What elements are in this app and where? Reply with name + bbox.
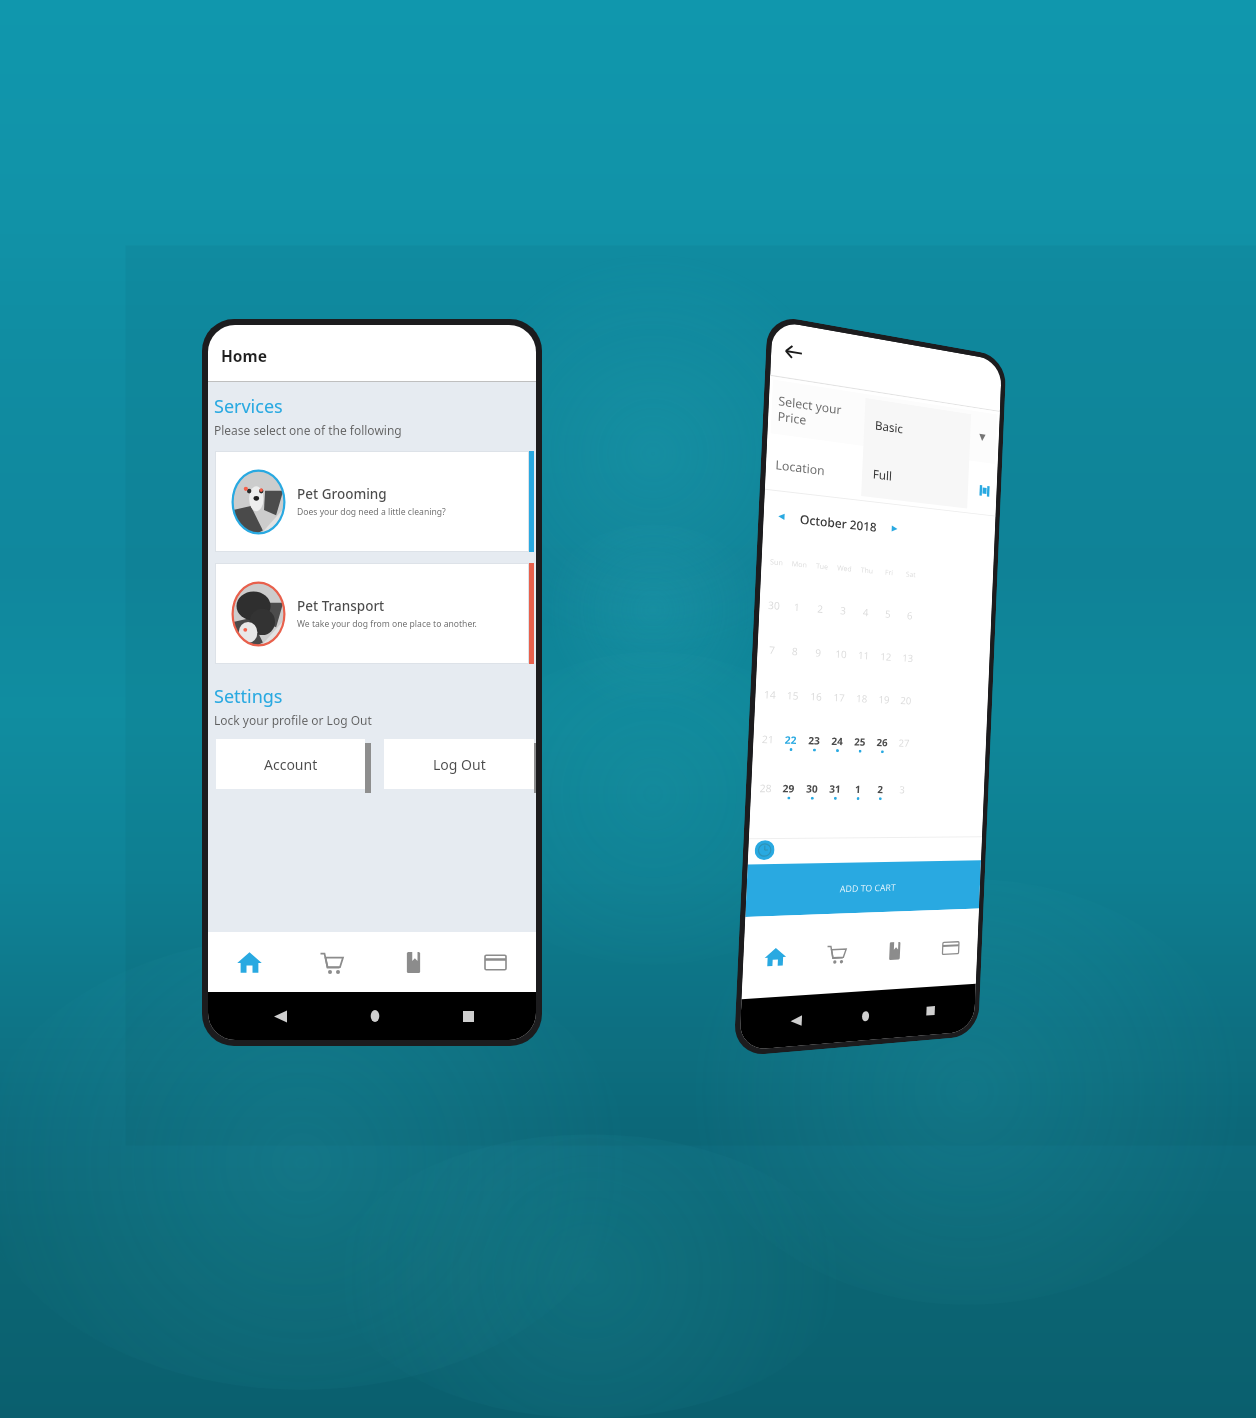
- staticText: 31: [829, 781, 842, 796]
- staticText: Does your dog need a little cleaning?: [297, 506, 446, 518]
- staticText: 27: [898, 736, 910, 750]
- staticText: 15: [786, 688, 799, 703]
- staticText: 9: [815, 645, 822, 660]
- button[interactable]: Pet Grooming: [215, 451, 529, 552]
- button[interactable]: 25: [848, 734, 871, 753]
- staticText: 22: [784, 732, 797, 747]
- staticText: 13: [902, 650, 914, 665]
- staticText: Select your Price: [777, 392, 843, 433]
- staticText: 2: [817, 601, 824, 616]
- staticText: 7: [769, 642, 776, 657]
- button[interactable]: Cart: [290, 932, 372, 992]
- button[interactable]: 24: [825, 733, 849, 752]
- button[interactable]: Payment: [454, 932, 536, 992]
- staticText: Pet Transport: [297, 597, 385, 615]
- staticText: 3: [840, 603, 847, 618]
- staticText: Fri: [885, 568, 894, 578]
- button[interactable]: 30: [799, 781, 824, 800]
- button[interactable]: 21: [756, 731, 780, 747]
- button[interactable]: 8: [783, 643, 806, 659]
- button[interactable]: 29: [777, 781, 800, 800]
- button[interactable]: 3: [891, 782, 913, 796]
- button[interactable]: 9: [806, 645, 830, 660]
- staticText: 30: [768, 597, 781, 613]
- button[interactable]: Select your Price: [767, 376, 1000, 467]
- button[interactable]: 27: [893, 735, 915, 750]
- staticText: Services: [214, 394, 283, 419]
- button[interactable]: 12: [874, 649, 897, 664]
- button[interactable]: 17: [827, 690, 851, 705]
- staticText: 25: [854, 734, 866, 749]
- staticText: 8: [792, 644, 798, 658]
- button[interactable]: 30: [762, 597, 786, 613]
- button[interactable]: 2: [868, 782, 891, 800]
- button[interactable]: Basic: [863, 398, 971, 461]
- button[interactable]: Pick location: [975, 480, 993, 501]
- button[interactable]: 19: [872, 692, 895, 707]
- staticText: 16: [810, 689, 823, 704]
- button[interactable]: 4: [854, 604, 877, 620]
- staticText: 28: [759, 781, 772, 795]
- staticText: Log Out: [433, 755, 486, 774]
- button[interactable]: Pick time: [754, 840, 775, 860]
- staticText: 1: [794, 599, 800, 614]
- button[interactable]: Back: [778, 335, 808, 368]
- button[interactable]: Log Out: [384, 739, 534, 789]
- staticText: We take your dog from one place to anoth…: [297, 618, 477, 630]
- staticText: 11: [858, 648, 870, 662]
- button[interactable]: 3: [831, 602, 854, 618]
- button[interactable]: 23: [802, 733, 826, 752]
- staticText: 19: [878, 692, 890, 706]
- button[interactable]: Payment: [921, 909, 979, 987]
- staticText: Full: [873, 465, 892, 484]
- staticText: Wed: [837, 563, 852, 575]
- staticText: 4: [863, 605, 869, 619]
- button[interactable]: 1: [785, 599, 808, 615]
- button[interactable]: 1: [846, 782, 869, 800]
- button[interactable]: ADD TO CART: [745, 860, 981, 917]
- button[interactable]: Home: [208, 932, 290, 992]
- button[interactable]: Pet Transport: [215, 563, 529, 664]
- staticText: 29: [782, 781, 795, 795]
- button[interactable]: Bookings: [864, 910, 924, 991]
- staticText: October 2018: [800, 510, 878, 535]
- button[interactable]: 31: [823, 781, 846, 800]
- staticText: Settings: [214, 684, 283, 709]
- button[interactable]: 5: [876, 606, 899, 621]
- button[interactable]: 16: [804, 689, 828, 704]
- staticText: 5: [885, 607, 891, 621]
- button[interactable]: 6: [898, 608, 920, 623]
- button[interactable]: Next month: [888, 521, 901, 536]
- staticText: 6: [907, 608, 913, 622]
- button[interactable]: 20: [894, 693, 917, 708]
- button[interactable]: Bookings: [372, 932, 454, 992]
- staticText: 17: [833, 690, 846, 705]
- button[interactable]: 13: [896, 650, 919, 665]
- button[interactable]: 14: [758, 687, 782, 702]
- staticText: 18: [856, 691, 868, 706]
- staticText: 3: [899, 782, 905, 796]
- button[interactable]: 26: [870, 735, 893, 753]
- button[interactable]: Full: [861, 447, 969, 508]
- button[interactable]: Account: [216, 739, 365, 789]
- button[interactable]: Previous month: [774, 509, 789, 525]
- staticText: Pet Grooming: [297, 485, 387, 503]
- button[interactable]: 28: [754, 781, 778, 795]
- staticText: Location: [775, 456, 826, 478]
- staticText: Tue: [816, 561, 828, 573]
- button[interactable]: 18: [850, 691, 873, 706]
- button[interactable]: 11: [852, 647, 875, 663]
- staticText: 12: [880, 649, 892, 664]
- button[interactable]: Location: [765, 436, 997, 516]
- button[interactable]: 2: [808, 601, 832, 617]
- button[interactable]: 22: [779, 732, 803, 751]
- button[interactable]: 15: [781, 688, 804, 703]
- button[interactable]: 7: [760, 642, 784, 658]
- staticText: ADD TO CART: [840, 881, 896, 894]
- button[interactable]: Cart: [804, 913, 867, 995]
- staticText: Home: [221, 345, 267, 366]
- button[interactable]: 10: [829, 646, 852, 661]
- staticText: 2: [877, 782, 883, 796]
- button[interactable]: Home: [741, 915, 808, 999]
- staticText: Lock your profile or Log Out: [214, 712, 372, 728]
